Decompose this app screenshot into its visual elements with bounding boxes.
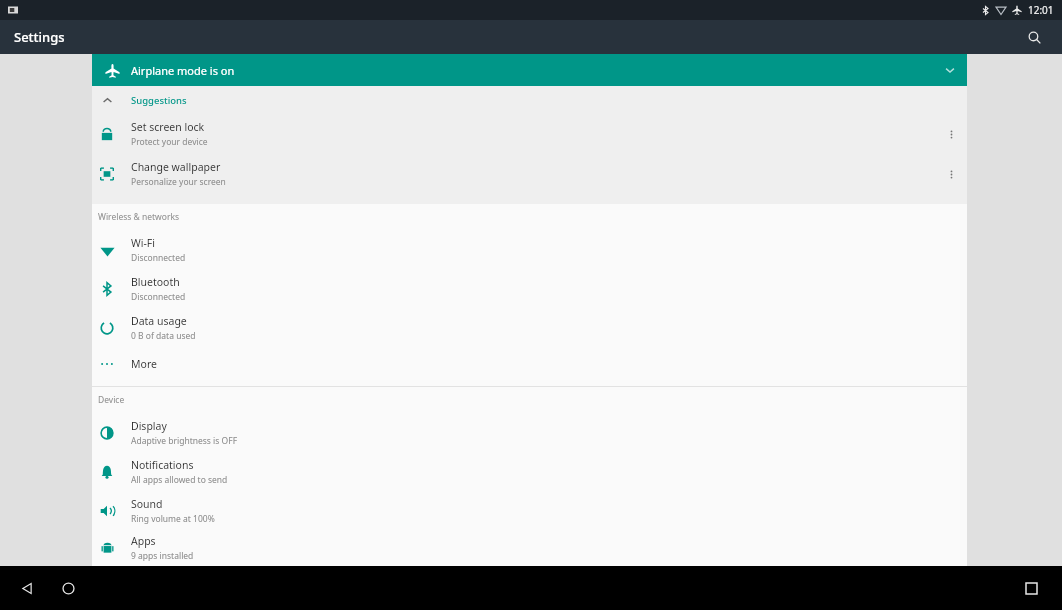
staticText: Wi-Fi [131,236,156,250]
staticText: All apps allowed to send [131,474,228,486]
staticText: Suggestions [131,94,187,107]
button[interactable]: Data usage [92,308,967,347]
button[interactable]: Home [53,573,83,603]
staticText: Notifications [131,458,194,472]
staticText: Disconnected [131,252,186,264]
button[interactable]: Airplane mode is on [92,54,967,86]
staticText: Bluetooth [131,275,180,289]
button[interactable]: Set screen lock [92,114,967,154]
staticText: 12:01 [1028,3,1054,17]
staticText: 9 apps installed [131,550,194,562]
staticText: Airplane mode is on [131,63,235,78]
button[interactable]: More options [940,123,962,145]
staticText: Change wallpaper [131,160,221,174]
other: Expand [943,63,957,77]
button[interactable]: Display [92,413,967,452]
button[interactable]: Change wallpaper [92,154,967,194]
button[interactable]: More [92,347,967,381]
staticText: Display [131,419,167,433]
staticText: Protect your device [131,136,208,148]
staticText: Settings [14,28,65,46]
button[interactable]: Search [1022,25,1046,49]
staticText: Adaptive brightness is OFF [131,435,238,447]
button[interactable]: Wi-Fi [92,230,967,269]
staticText: Sound [131,497,163,511]
staticText: Ring volume at 100% [131,513,215,525]
staticText: Apps [131,534,156,548]
staticText: Data usage [131,314,187,328]
button[interactable]: Sound [92,491,967,530]
button[interactable]: Recent apps [1016,573,1046,603]
staticText: Wireless & networks [98,211,180,223]
button[interactable]: Notifications [92,452,967,491]
button[interactable]: Back [12,573,42,603]
button[interactable]: Bluetooth [92,269,967,308]
staticText: Set screen lock [131,120,205,134]
staticText: Personalize your screen [131,176,226,188]
staticText: More [131,357,157,371]
staticText: Disconnected [131,291,186,303]
button[interactable]: Suggestions [92,86,967,114]
button[interactable]: More options [940,163,962,185]
button[interactable]: Apps [92,530,967,566]
staticText: Device [98,394,125,406]
staticText: 0 B of data used [131,330,196,342]
